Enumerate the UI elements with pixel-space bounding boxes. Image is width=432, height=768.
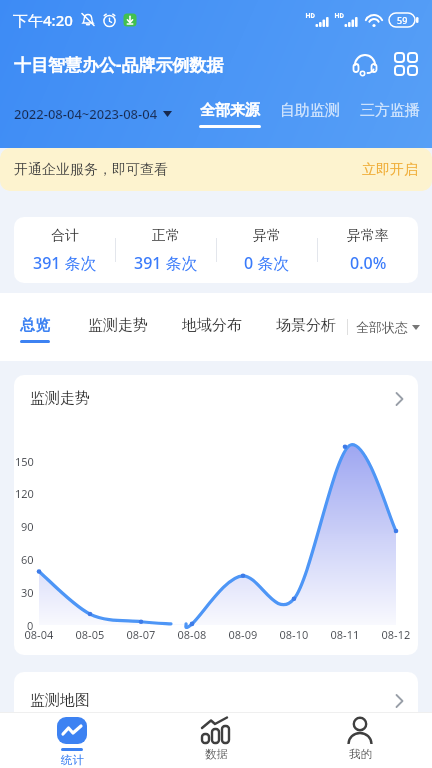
staticText: 十目智慧办公-品牌示例数据 [14, 53, 224, 76]
staticText: 0.0% [350, 252, 387, 274]
staticText: 数据 [205, 747, 228, 761]
staticText: 59 [397, 14, 408, 26]
staticText: 三方监播 [360, 101, 420, 120]
button[interactable] [394, 52, 418, 76]
button[interactable]: 开通企业服务，即可查看 [0, 148, 432, 191]
staticText: 我的 [349, 747, 372, 761]
staticText: 正常 [152, 227, 180, 245]
staticText: 合计 [51, 227, 79, 245]
button[interactable]: 三方监播 [359, 101, 421, 128]
staticText: 立即开启 [362, 161, 418, 179]
staticText: 下午4:20 [13, 10, 73, 30]
staticText: 监测走势 [30, 389, 90, 408]
staticText: 自助监测 [280, 101, 340, 120]
button[interactable]: 异常率 [318, 217, 418, 283]
button[interactable]: 全部来源 [199, 101, 261, 128]
staticText: 全部状态 [356, 319, 408, 335]
staticText: 场景分析 [276, 316, 336, 335]
staticText: 统计 [61, 753, 84, 767]
button[interactable]: 自助监测 [279, 101, 341, 128]
button[interactable] [395, 693, 404, 709]
button[interactable]: 数据 [144, 713, 288, 768]
button[interactable]: 监测走势 [88, 316, 148, 343]
button[interactable]: 正常 [116, 217, 216, 283]
staticText: 2022-08-04~2023-08-04 [14, 105, 158, 123]
staticText: 0 条次 [244, 252, 290, 274]
button[interactable]: 全部状态 [347, 293, 420, 361]
button[interactable]: 总览 [20, 316, 50, 343]
staticText: 开通企业服务，即可查看 [14, 161, 168, 179]
button[interactable]: 合计 [14, 217, 115, 283]
button[interactable]: 场景分析 [276, 316, 336, 343]
button[interactable] [352, 51, 378, 77]
button[interactable]: 2022-08-04~2023-08-04 [14, 105, 172, 123]
staticText: 异常 [253, 227, 281, 245]
staticText: 全部来源 [200, 101, 260, 120]
button[interactable]: 异常 [217, 217, 317, 283]
staticText: 异常率 [347, 227, 389, 245]
staticText: 监测走势 [88, 316, 148, 335]
staticText: 391 条次 [33, 252, 97, 274]
staticText: 地域分布 [182, 316, 242, 335]
button[interactable]: 统计 [0, 713, 144, 768]
button[interactable]: 地域分布 [182, 316, 242, 343]
button[interactable]: 我的 [288, 713, 432, 768]
staticText: 总览 [20, 316, 50, 335]
staticText: 391 条次 [134, 252, 198, 274]
staticText: 监测地图 [30, 691, 90, 710]
button[interactable] [395, 391, 404, 407]
